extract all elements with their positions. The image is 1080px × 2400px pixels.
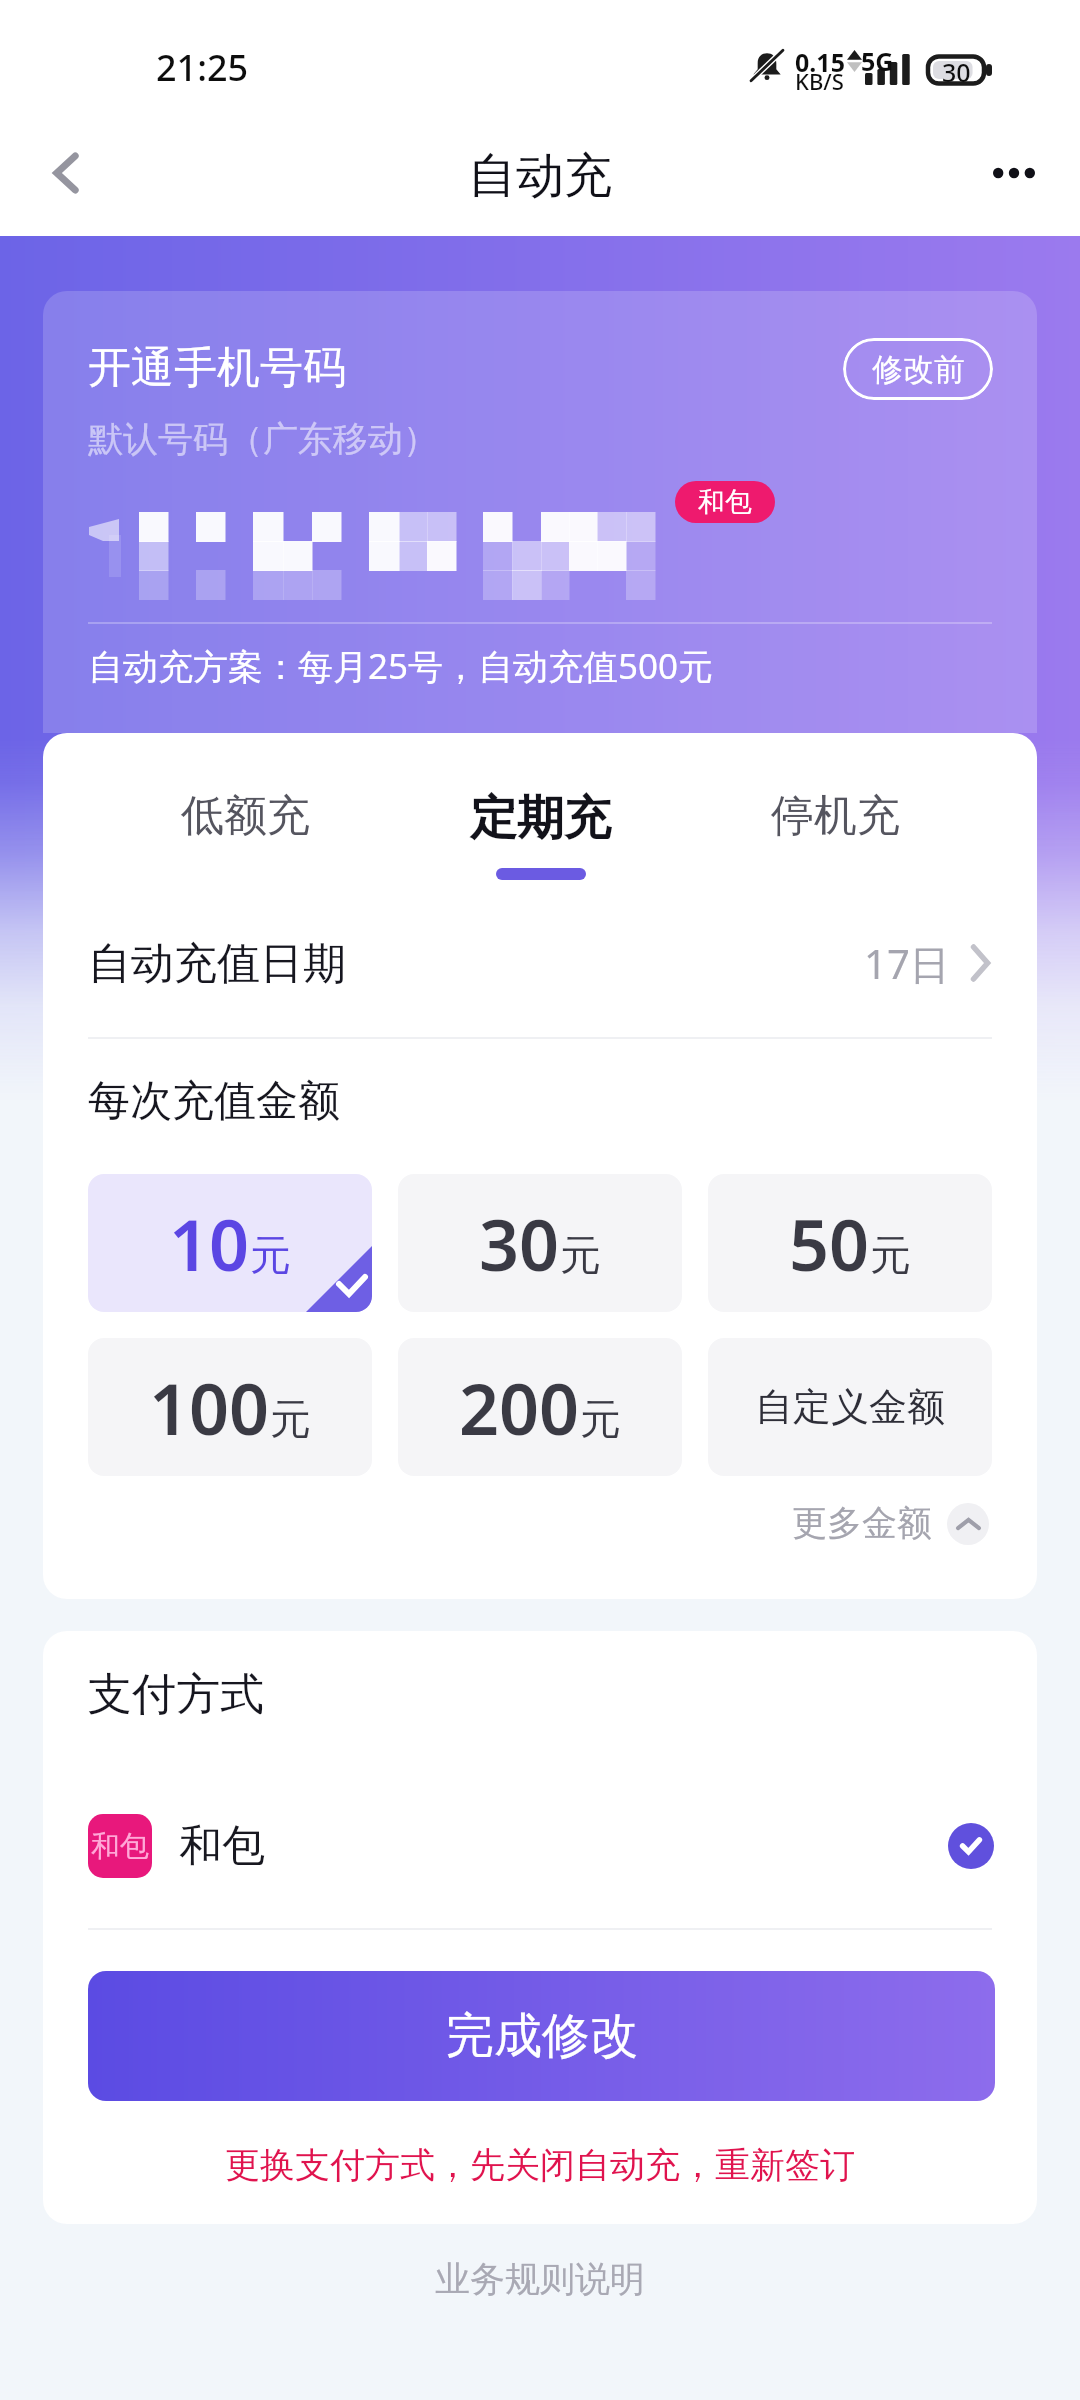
button[interactable]: 17日 <box>88 918 992 1008</box>
button[interactable]: Back <box>32 139 100 207</box>
staticText: 元 <box>250 1230 291 1282</box>
button[interactable]: 更换支付方式，先关闭自动充，重新签订 <box>209 2135 871 2195</box>
staticText: 和包 <box>91 1828 149 1865</box>
staticText: 元 <box>870 1230 911 1282</box>
staticText: 支付方式 <box>88 1667 264 1722</box>
button[interactable]: 业务规则说明 <box>415 2251 665 2307</box>
staticText: 自动充 <box>468 146 612 206</box>
button[interactable]: 修改前 <box>843 338 993 400</box>
staticText: 自动充值日期 <box>88 937 346 991</box>
staticText: 开通手机号码 <box>88 341 346 395</box>
button[interactable]: 完成修改 <box>88 1971 995 2101</box>
staticText: 50 <box>789 1196 870 1291</box>
button[interactable]: 定期充 <box>393 789 688 880</box>
staticText: 100 <box>149 1360 270 1455</box>
button[interactable]: 和包 <box>88 1801 992 1891</box>
button[interactable]: 更多金额 <box>783 1495 998 1553</box>
staticText: 0.15 <box>795 45 845 79</box>
staticText: 元 <box>580 1394 621 1446</box>
staticText: 30 <box>942 55 971 85</box>
button[interactable]: 200 <box>398 1338 682 1476</box>
staticText: KB/S <box>795 66 844 96</box>
staticText: 自定义金额 <box>755 1383 945 1431</box>
button[interactable]: 10 <box>88 1174 372 1312</box>
staticText: 定期充 <box>470 789 611 848</box>
staticText: 5G <box>861 44 894 78</box>
staticText: 完成修改 <box>446 2006 638 2066</box>
staticText: 和包 <box>179 1819 265 1873</box>
button[interactable]: 100 <box>88 1338 372 1476</box>
staticText: 修改前 <box>872 350 965 389</box>
staticText: 和包 <box>698 485 752 519</box>
button[interactable]: More options <box>980 142 1046 204</box>
button[interactable]: 50 <box>708 1174 992 1312</box>
staticText: 200 <box>459 1360 580 1455</box>
button[interactable]: 自定义金额 <box>708 1338 992 1476</box>
staticText: 默认号码（广东移动） <box>88 417 438 461</box>
staticText: 10 <box>169 1196 250 1291</box>
staticText: 停机充 <box>771 789 900 843</box>
staticText: 元 <box>270 1394 311 1446</box>
staticText: 17日 <box>864 936 950 991</box>
staticText: 自动充方案：每月25号，自动充值500元 <box>88 642 714 690</box>
staticText: 更换支付方式，先关闭自动充，重新签订 <box>225 2143 855 2187</box>
button[interactable]: 低额充 <box>97 789 393 843</box>
staticText: 元 <box>560 1230 601 1282</box>
button[interactable]: 30 <box>398 1174 682 1312</box>
button[interactable]: 停机充 <box>688 789 983 843</box>
staticText: 业务规则说明 <box>435 2257 645 2301</box>
staticText: 更多金额 <box>792 1501 932 1545</box>
staticText: 30 <box>479 1196 560 1291</box>
staticText: 低额充 <box>181 789 310 843</box>
staticText: 21:25 <box>156 43 249 92</box>
staticText: 每次充值金额 <box>88 1075 340 1128</box>
